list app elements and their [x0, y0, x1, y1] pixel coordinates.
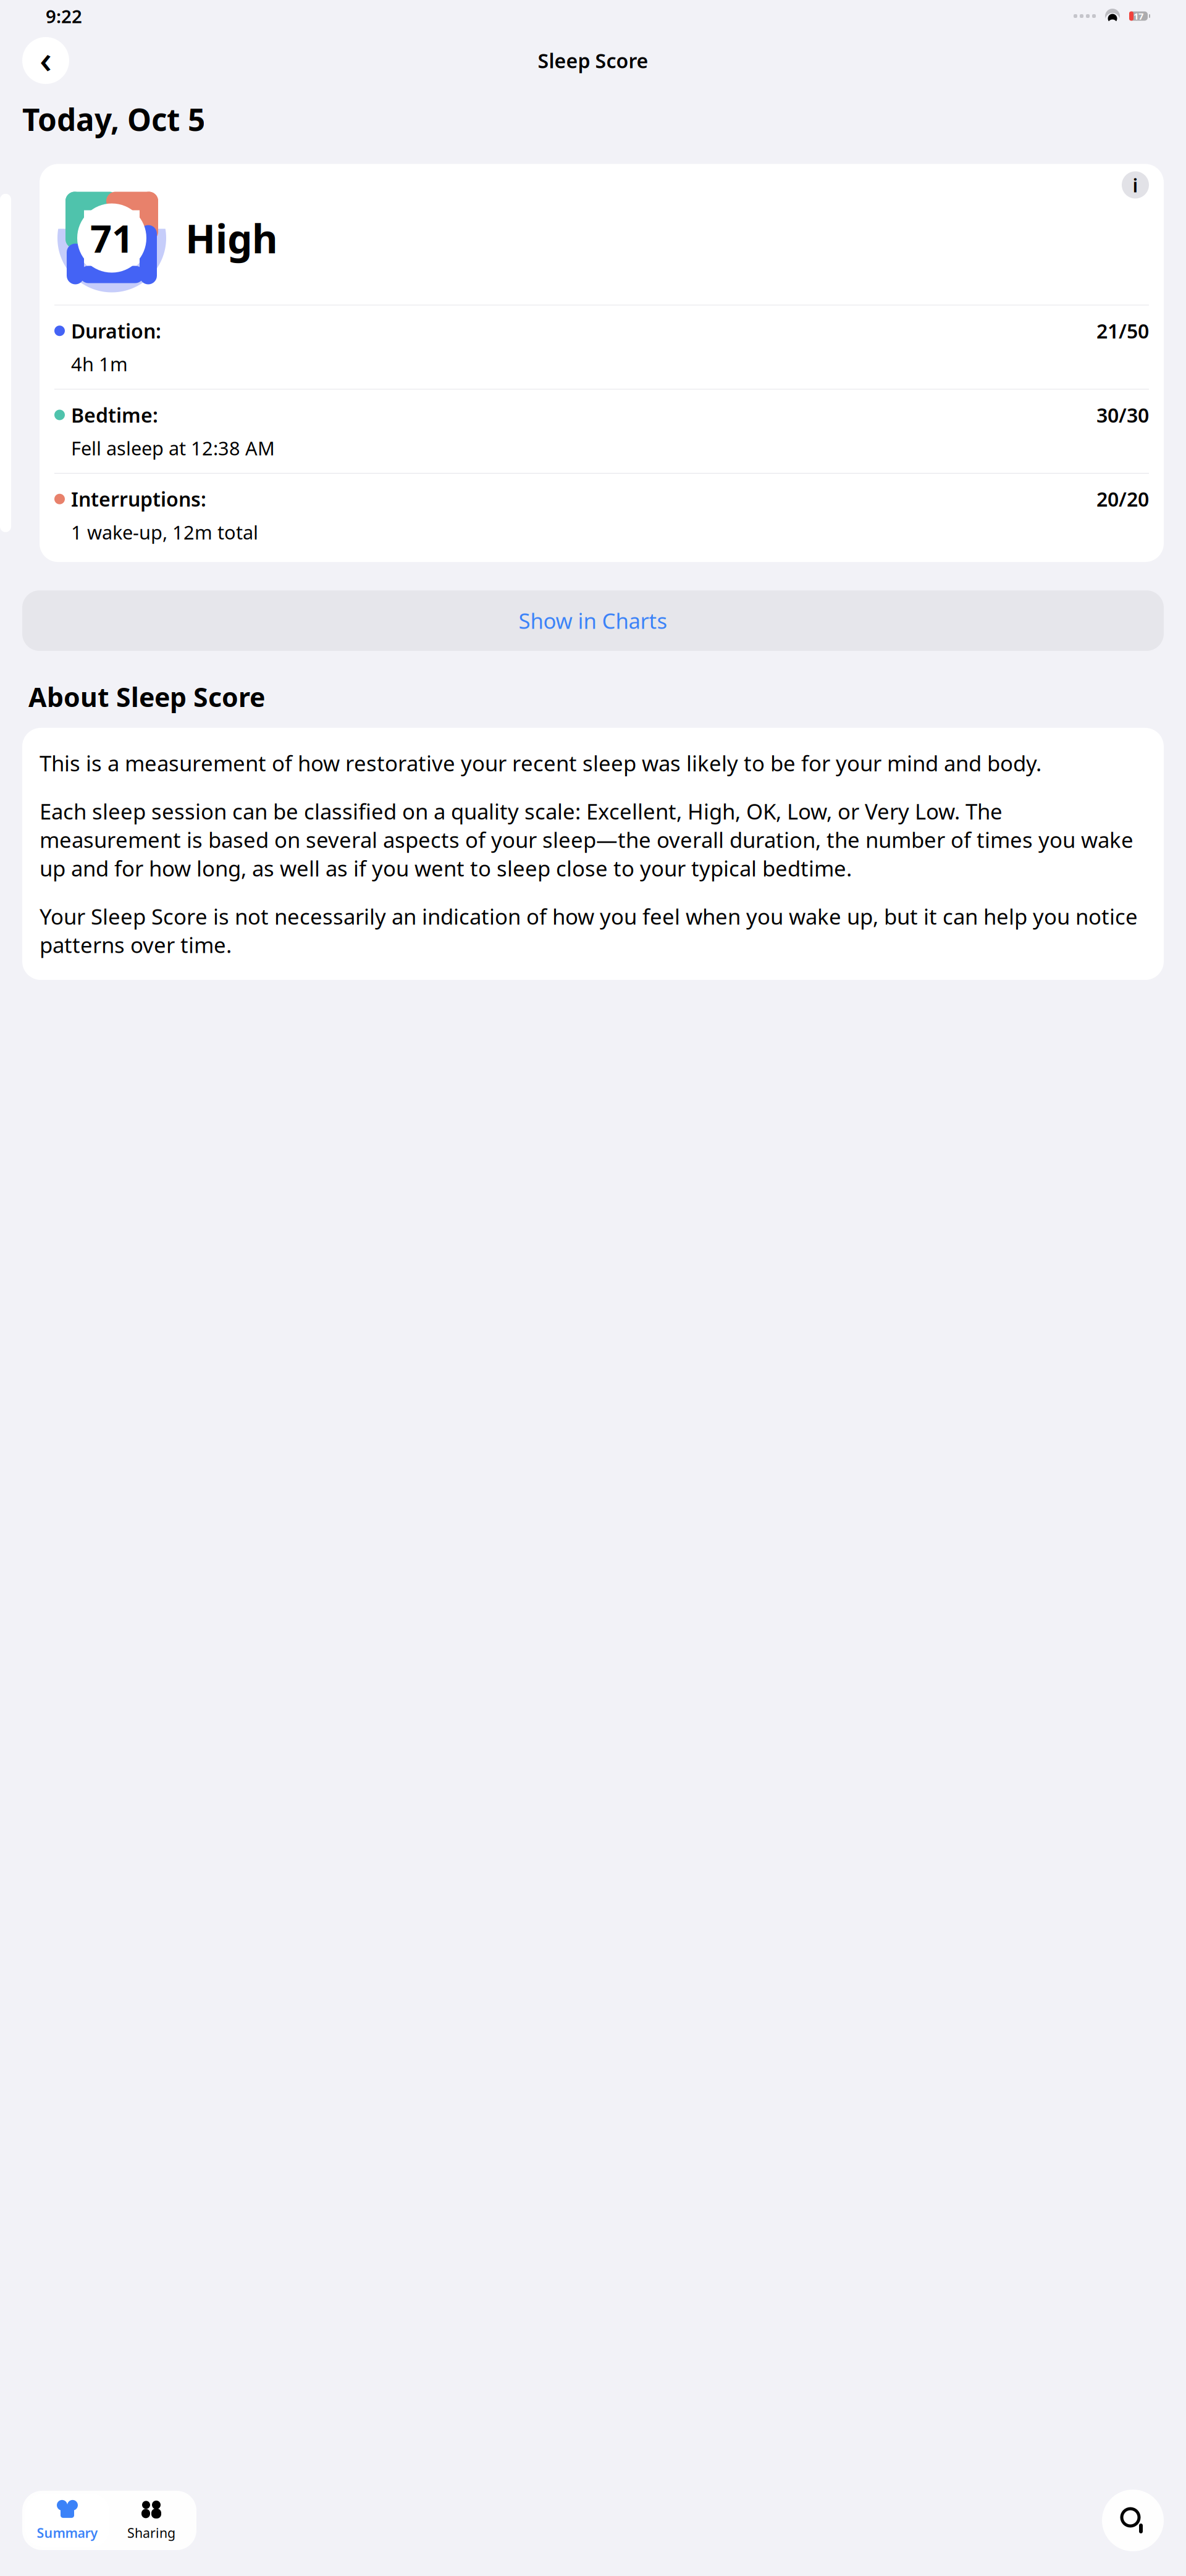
staticText: Each sleep session can be classified on …: [40, 797, 1133, 882]
button[interactable]: Sharing: [109, 2494, 193, 2547]
staticText: Sharing: [127, 2524, 175, 2541]
staticText: Sleep Score: [538, 47, 648, 74]
staticText: This is a measurement of how restorative…: [40, 749, 1041, 777]
button[interactable]: About Sleep Score: [1122, 171, 1149, 199]
button[interactable]: Summary: [25, 2494, 109, 2547]
staticText: 1 wake-up, 12m total: [71, 520, 258, 545]
staticText: Your Sleep Score is not necessarily an i…: [40, 902, 1138, 959]
staticText: Today, Oct 5: [22, 99, 205, 139]
staticText: ‹: [40, 34, 52, 84]
staticText: 17: [1133, 10, 1143, 22]
staticText: i: [1133, 172, 1138, 197]
staticText: 71: [90, 213, 133, 263]
staticText: Summary: [37, 2524, 98, 2541]
staticText: 21/50: [1096, 318, 1149, 344]
button[interactable]: Search: [1102, 2490, 1164, 2551]
staticText: Show in Charts: [519, 606, 667, 635]
staticText: About Sleep Score: [28, 679, 265, 714]
staticText: Duration:: [71, 318, 161, 344]
staticText: Interruptions:: [71, 486, 206, 512]
staticText: Bedtime:: [71, 402, 158, 428]
staticText: 9:22: [46, 4, 82, 28]
staticText: High: [185, 212, 278, 264]
staticText: 4h 1m: [71, 351, 128, 376]
button[interactable]: Show in Charts: [22, 590, 1164, 651]
button[interactable]: Back: [22, 34, 69, 87]
staticText: 30/30: [1096, 402, 1149, 428]
staticText: 20/20: [1096, 486, 1149, 512]
staticText: Fell asleep at 12:38 AM: [71, 435, 275, 461]
